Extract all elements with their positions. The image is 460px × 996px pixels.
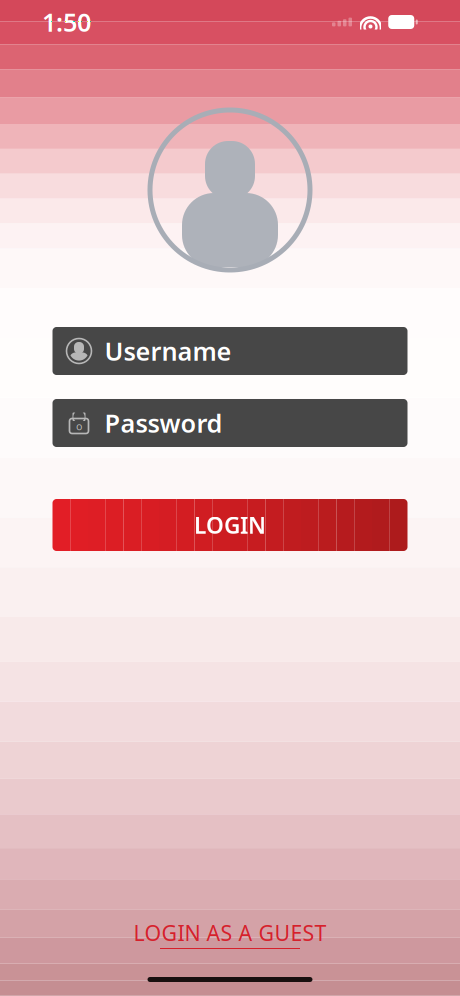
- button[interactable]: LOGIN AS A GUEST: [123, 915, 336, 953]
- staticText: Password: [104, 406, 222, 440]
- staticText: o: [76, 419, 82, 433]
- button[interactable]: o: [52, 399, 407, 447]
- staticText: 1:50: [42, 5, 91, 39]
- staticText: LOGIN: [194, 510, 266, 540]
- staticText: Username: [104, 334, 231, 368]
- button[interactable]: LOGIN: [52, 499, 407, 551]
- staticText: LOGIN AS A GUEST: [133, 919, 326, 947]
- button[interactable]: Username: [52, 327, 407, 375]
